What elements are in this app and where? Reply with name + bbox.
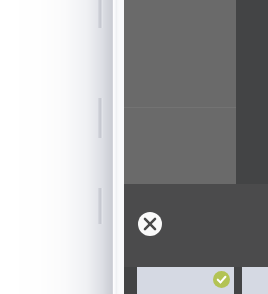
button[interactable]: Selected (213, 271, 230, 288)
button[interactable]: Side button (98, 188, 103, 224)
button[interactable]: Selected (137, 267, 234, 294)
button[interactable]: Close (138, 212, 162, 236)
button[interactable]: Side button (98, 0, 103, 28)
button[interactable]: Side button (98, 98, 103, 138)
